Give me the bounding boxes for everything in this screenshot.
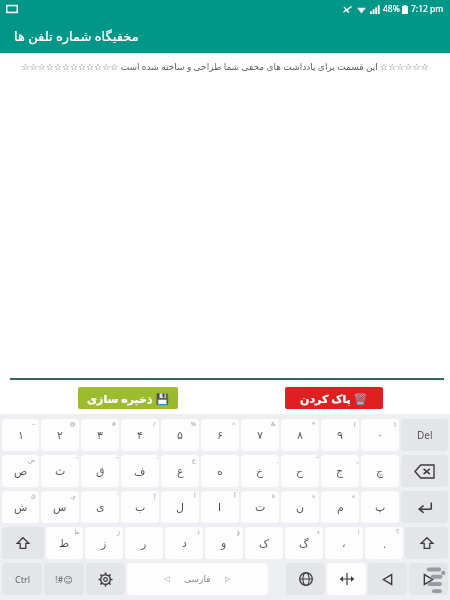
staticText: /	[153, 420, 156, 428]
staticText: 48%	[383, 3, 400, 15]
staticText: إ	[154, 492, 156, 499]
staticText: آ	[234, 492, 236, 499]
staticText: ۳	[97, 429, 103, 442]
staticText: ح	[296, 465, 304, 478]
button[interactable]: د	[165, 527, 203, 559]
button[interactable]: ۴	[121, 419, 159, 451]
button[interactable]: خ	[241, 455, 279, 487]
button[interactable]: ذخیره سازی 💾	[78, 387, 178, 409]
staticText: .	[383, 536, 386, 551]
staticText: Del	[417, 428, 433, 442]
staticText: ۵	[177, 429, 183, 442]
staticText: ئ	[31, 492, 36, 499]
button[interactable]: shift	[2, 527, 44, 559]
button[interactable]: ۸	[281, 419, 319, 451]
button[interactable]: Space	[127, 563, 268, 595]
button[interactable]: Symbols and emoji	[44, 563, 84, 595]
button[interactable]: ۵	[161, 419, 199, 451]
staticText: ض	[28, 456, 36, 463]
staticText: (	[354, 420, 356, 428]
button[interactable]: و	[205, 527, 243, 559]
staticText: چ	[376, 465, 384, 478]
staticText: %	[191, 420, 196, 428]
staticText: ؟	[396, 528, 400, 535]
staticText: ة	[272, 492, 276, 499]
staticText: س	[53, 501, 67, 514]
staticText: *	[312, 420, 316, 428]
button[interactable]: ۹	[321, 419, 359, 451]
button[interactable]: ی	[81, 491, 119, 523]
button[interactable]: پاک کردن 🗑	[285, 387, 383, 409]
button[interactable]: ۲	[41, 419, 79, 451]
button[interactable]: پ	[361, 491, 399, 523]
button[interactable]: right	[409, 563, 448, 595]
button[interactable]: ج	[321, 455, 359, 487]
staticText: ۶	[217, 429, 223, 442]
staticText: ،	[342, 537, 346, 550]
staticText: ز	[101, 537, 107, 550]
button[interactable]: ا	[201, 491, 239, 523]
staticText: !#☺	[55, 573, 73, 585]
staticText: ۹	[337, 429, 343, 442]
button[interactable]: ث	[41, 455, 79, 487]
button[interactable]: چ	[361, 455, 399, 487]
button[interactable]: ۰	[361, 419, 399, 451]
button[interactable]: ف	[121, 455, 159, 487]
button[interactable]: ه	[201, 455, 239, 487]
staticText: و	[221, 537, 227, 550]
button[interactable]: ز	[85, 527, 123, 559]
staticText: ا	[218, 501, 222, 514]
button[interactable]: shift	[405, 527, 448, 559]
staticText: ث	[55, 465, 66, 478]
button[interactable]: ۳	[81, 419, 119, 451]
staticText: 7:12 pm	[411, 3, 444, 15]
staticText: خ	[256, 465, 264, 478]
button[interactable]: ح	[281, 455, 319, 487]
button[interactable]: left	[368, 563, 407, 595]
button[interactable]: ب	[121, 491, 159, 523]
button[interactable]: ت	[241, 491, 279, 523]
button[interactable]: گ	[285, 527, 323, 559]
staticText: پاک کردن 🗑	[300, 391, 368, 406]
button[interactable]: ع	[161, 455, 199, 487]
staticText: ۸	[297, 429, 303, 442]
button[interactable]: ل	[161, 491, 199, 523]
button[interactable]: ص	[2, 455, 39, 487]
staticText: ۷	[257, 429, 263, 442]
staticText: پ	[375, 501, 386, 514]
staticText: فارسی	[184, 574, 211, 584]
button[interactable]: ن	[281, 491, 319, 523]
button[interactable]: ۷	[241, 419, 279, 451]
staticText: #	[112, 420, 116, 428]
button[interactable]: Del	[401, 419, 448, 451]
staticText: ق	[96, 465, 105, 478]
staticText: ی	[96, 501, 105, 514]
button[interactable]: ،	[325, 527, 363, 559]
staticText: مخفیگاه شماره تلفن ها	[14, 27, 139, 45]
button[interactable]: ک	[245, 527, 283, 559]
button[interactable]: globe	[286, 563, 325, 595]
button[interactable]: ق	[81, 455, 119, 487]
staticText: ۰	[377, 429, 383, 442]
staticText: ب	[135, 501, 146, 514]
staticText: ء	[317, 528, 320, 535]
staticText: )	[394, 420, 396, 428]
button[interactable]: م	[321, 491, 359, 523]
staticText: م	[337, 501, 344, 514]
button[interactable]: cursor	[327, 563, 366, 595]
button[interactable]: ط	[46, 527, 83, 559]
button[interactable]: س	[41, 491, 79, 523]
button[interactable]: ۱	[2, 419, 39, 451]
staticText: ط	[59, 537, 70, 550]
button[interactable]: .	[365, 527, 403, 559]
button[interactable]: backspace	[401, 455, 448, 487]
button[interactable]: Ctrl	[2, 563, 42, 595]
staticText: د	[182, 537, 187, 550]
button[interactable]: enter	[401, 491, 448, 523]
button[interactable]: ۶	[201, 419, 239, 451]
button[interactable]: ر	[125, 527, 163, 559]
staticText: ؤ	[237, 528, 240, 535]
button[interactable]: ش	[2, 491, 39, 523]
staticText: ي	[71, 492, 76, 499]
button[interactable]: gear	[86, 563, 125, 595]
